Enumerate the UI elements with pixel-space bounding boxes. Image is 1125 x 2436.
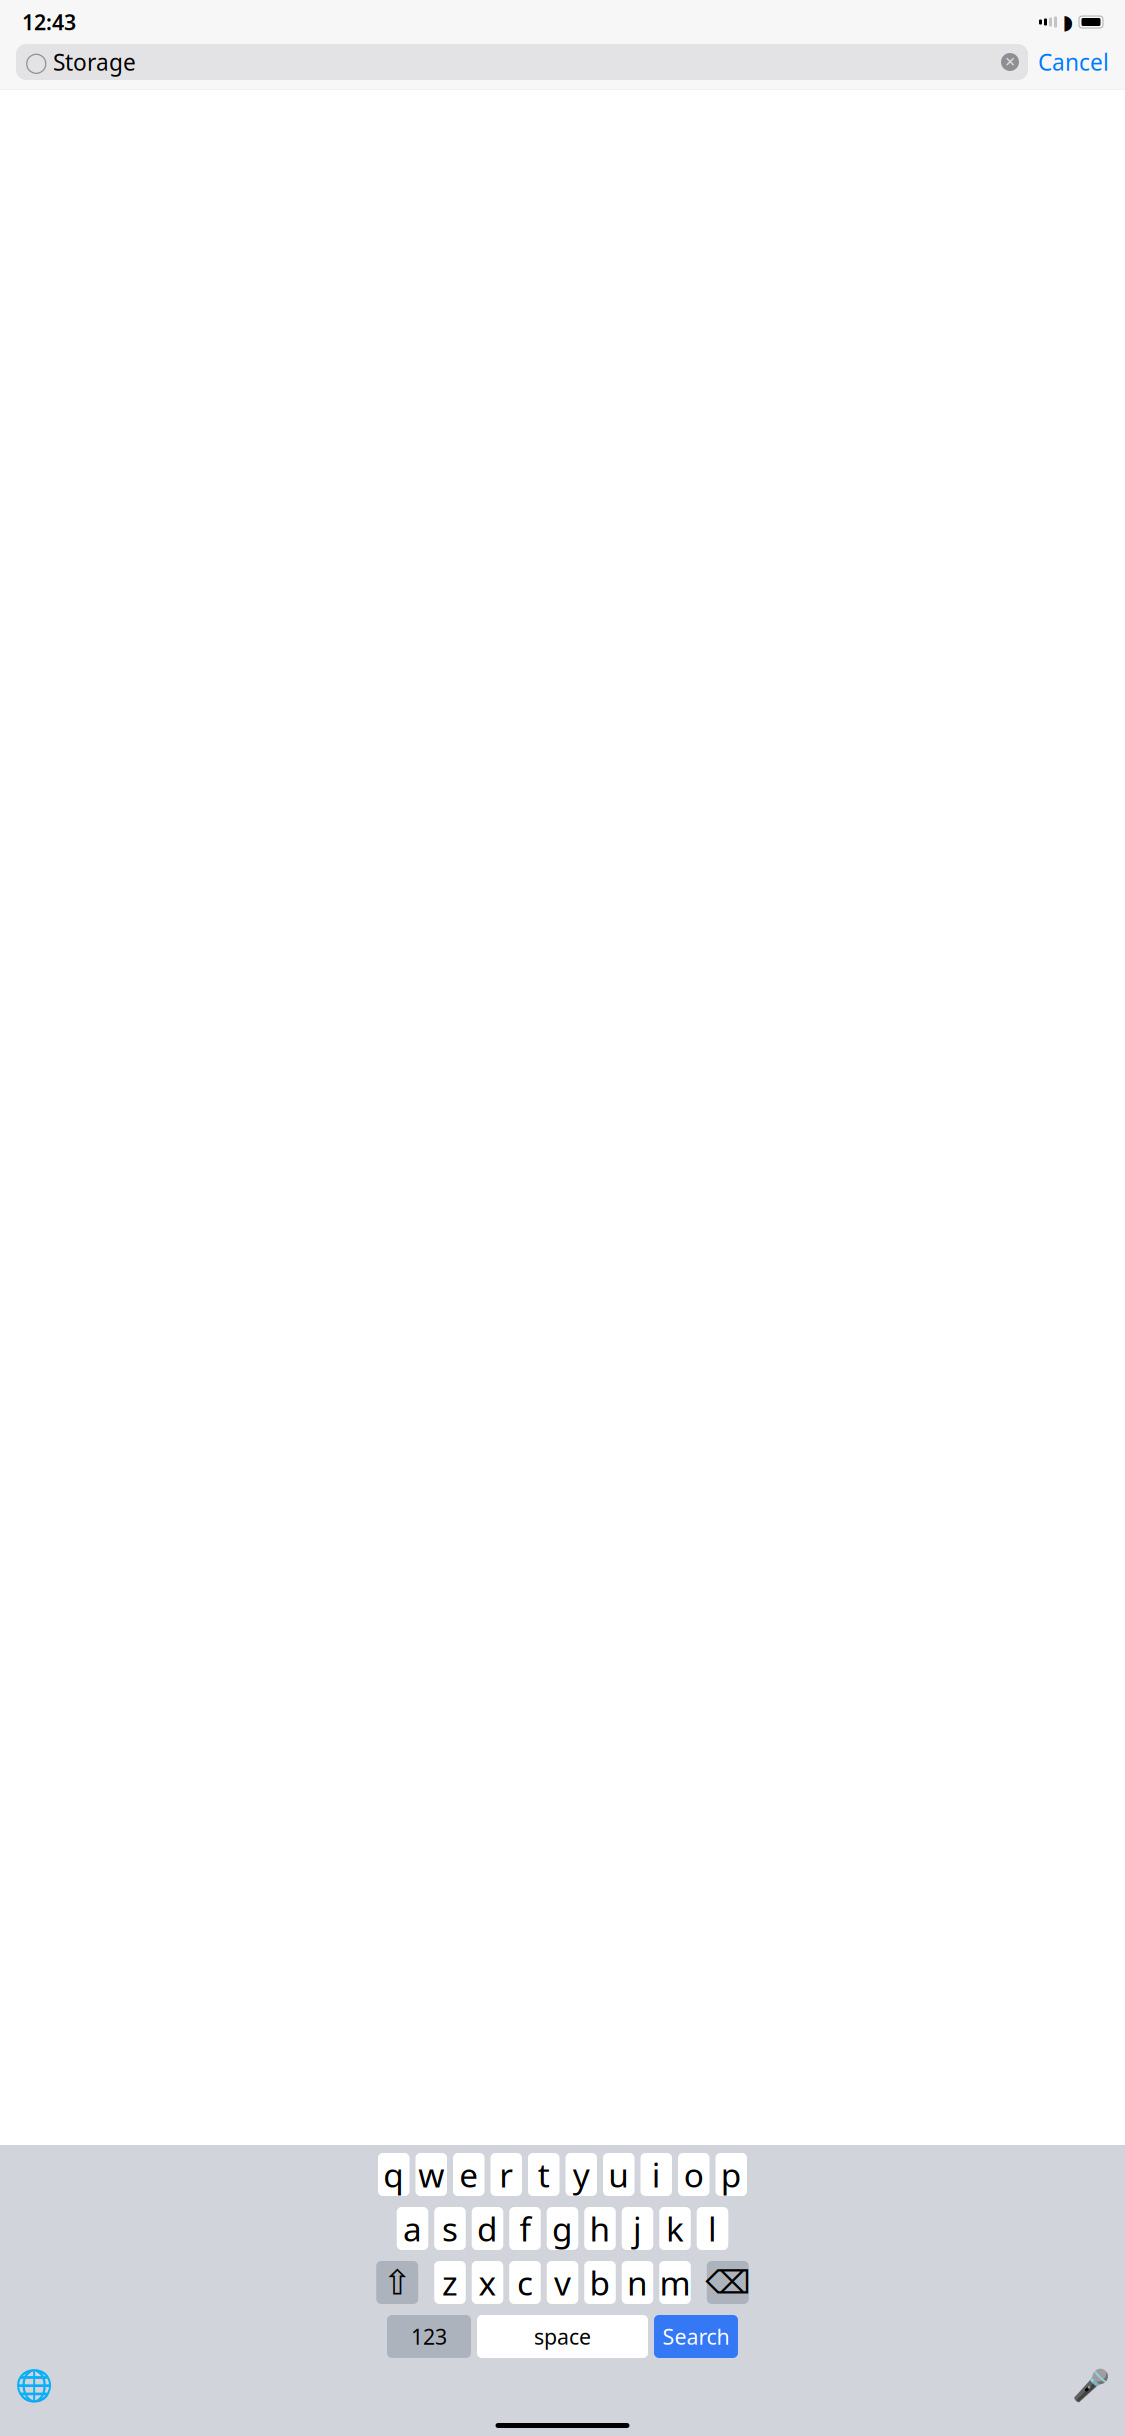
button[interactable]: Dictation bbox=[1071, 2368, 1111, 2404]
staticText: j bbox=[633, 2206, 642, 2251]
button[interactable]: n bbox=[622, 2261, 653, 2304]
staticText: d bbox=[477, 2206, 498, 2251]
button[interactable]: Next keyboard bbox=[14, 2368, 54, 2404]
staticText: s bbox=[442, 2206, 458, 2251]
button[interactable]: h bbox=[584, 2207, 616, 2250]
staticText: v bbox=[554, 2260, 571, 2305]
staticText: x bbox=[478, 2260, 496, 2305]
button[interactable]: r bbox=[490, 2153, 522, 2196]
button[interactable]: f bbox=[509, 2207, 541, 2250]
button[interactable]: 123 bbox=[387, 2315, 471, 2358]
button[interactable]: Delete bbox=[707, 2261, 749, 2304]
staticText: o bbox=[684, 2152, 704, 2197]
button[interactable]: p bbox=[715, 2153, 747, 2196]
button[interactable]: j bbox=[622, 2207, 653, 2250]
button[interactable]: o bbox=[678, 2153, 709, 2196]
staticText: r bbox=[499, 2152, 513, 2197]
button[interactable]: v bbox=[547, 2261, 578, 2304]
button[interactable]: a bbox=[397, 2207, 428, 2250]
button[interactable]: q bbox=[378, 2153, 409, 2196]
staticText: Cancel bbox=[1038, 47, 1109, 77]
staticText: space bbox=[534, 2322, 591, 2351]
button[interactable]: s bbox=[434, 2207, 466, 2250]
staticText: e bbox=[459, 2152, 478, 2197]
staticText: ◗ bbox=[1062, 11, 1073, 33]
button[interactable]: u bbox=[603, 2153, 634, 2196]
staticText: h bbox=[589, 2206, 610, 2251]
staticText: g bbox=[552, 2206, 573, 2251]
button[interactable]: x bbox=[472, 2261, 503, 2304]
button[interactable]: t bbox=[528, 2153, 559, 2196]
staticText: ⌫ bbox=[705, 2264, 750, 2301]
staticText: ✕ bbox=[1004, 54, 1015, 69]
staticText: k bbox=[666, 2206, 684, 2251]
button[interactable]: Shift bbox=[376, 2261, 418, 2304]
button[interactable]: i bbox=[640, 2153, 672, 2196]
staticText: t bbox=[538, 2152, 550, 2197]
button[interactable]: z bbox=[434, 2261, 466, 2304]
staticText: ⇧ bbox=[383, 2263, 412, 2302]
button[interactable]: c bbox=[509, 2261, 541, 2304]
button[interactable]: y bbox=[565, 2153, 597, 2196]
staticText: b bbox=[589, 2260, 610, 2305]
staticText: c bbox=[517, 2260, 533, 2305]
button[interactable]: l bbox=[697, 2207, 728, 2250]
button[interactable]: g bbox=[547, 2207, 578, 2250]
button[interactable]: Search bbox=[654, 2315, 738, 2358]
staticText: q bbox=[383, 2152, 404, 2197]
staticText: z bbox=[442, 2260, 458, 2305]
staticText: Storage bbox=[53, 47, 136, 77]
staticText: 12:43 bbox=[22, 8, 76, 36]
button[interactable]: b bbox=[584, 2261, 616, 2304]
button[interactable]: e bbox=[453, 2153, 484, 2196]
staticText: ◯ bbox=[25, 51, 47, 73]
staticText: l bbox=[708, 2206, 717, 2251]
staticText: n bbox=[627, 2260, 648, 2305]
staticText: Search bbox=[662, 2322, 729, 2351]
staticText: f bbox=[519, 2206, 530, 2251]
button[interactable]: Cancel bbox=[1038, 47, 1109, 77]
button[interactable]: w bbox=[415, 2153, 447, 2196]
staticText: p bbox=[721, 2152, 742, 2197]
staticText: 123 bbox=[411, 2322, 447, 2351]
staticText: u bbox=[608, 2152, 629, 2197]
staticText: m bbox=[659, 2260, 690, 2305]
button[interactable]: ◯ bbox=[16, 44, 1028, 80]
staticText: y bbox=[573, 2152, 590, 2197]
staticText: w bbox=[418, 2152, 444, 2197]
button[interactable]: d bbox=[472, 2207, 503, 2250]
staticText: a bbox=[403, 2206, 422, 2251]
button[interactable]: space bbox=[477, 2315, 648, 2358]
staticText: i bbox=[652, 2152, 661, 2197]
button[interactable]: m bbox=[659, 2261, 691, 2304]
staticText: 🎤 bbox=[1072, 2368, 1110, 2403]
button[interactable]: k bbox=[659, 2207, 691, 2250]
staticText: 🌐 bbox=[15, 2368, 53, 2403]
